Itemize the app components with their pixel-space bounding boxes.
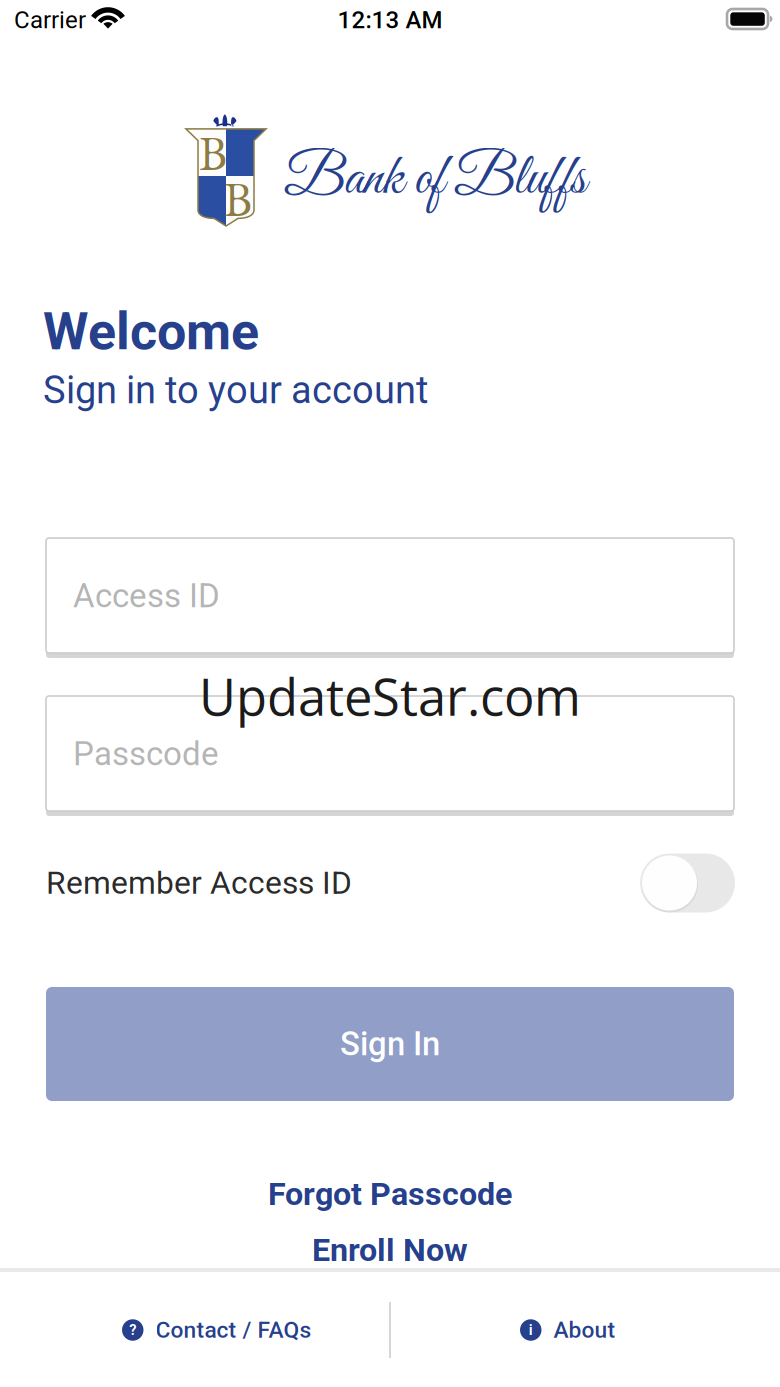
staticText: Welcome xyxy=(43,301,259,362)
staticText: Access ID xyxy=(73,577,220,615)
button[interactable]: i xyxy=(520,1287,650,1373)
button[interactable]: Forgot Passcode xyxy=(0,1170,780,1218)
staticText: Enroll Now xyxy=(312,1231,468,1269)
staticText: Sign In xyxy=(340,1025,440,1063)
staticText: B xyxy=(224,168,252,230)
staticText: Forgot Passcode xyxy=(268,1175,512,1213)
staticText: Remember Access ID xyxy=(46,864,352,902)
staticText: Contact / FAQs xyxy=(155,1317,311,1343)
staticText: i xyxy=(529,1321,533,1339)
staticText: B xyxy=(199,122,227,184)
button[interactable]: ? xyxy=(122,1287,342,1373)
staticText: Sign in to your account xyxy=(43,368,428,412)
staticText: UpdateStar.com xyxy=(199,661,581,730)
staticText: About xyxy=(553,1317,615,1343)
button[interactable]: Remember Access ID xyxy=(640,853,735,912)
button[interactable]: Sign In xyxy=(46,987,734,1101)
staticText: Carrier xyxy=(14,6,86,34)
staticText: Passcode xyxy=(73,735,219,773)
staticText: Bank of Bluffs xyxy=(284,144,586,216)
staticText: 12:13 AM xyxy=(337,6,442,34)
staticText: ? xyxy=(129,1321,136,1339)
button[interactable]: Enroll Now xyxy=(0,1226,780,1274)
